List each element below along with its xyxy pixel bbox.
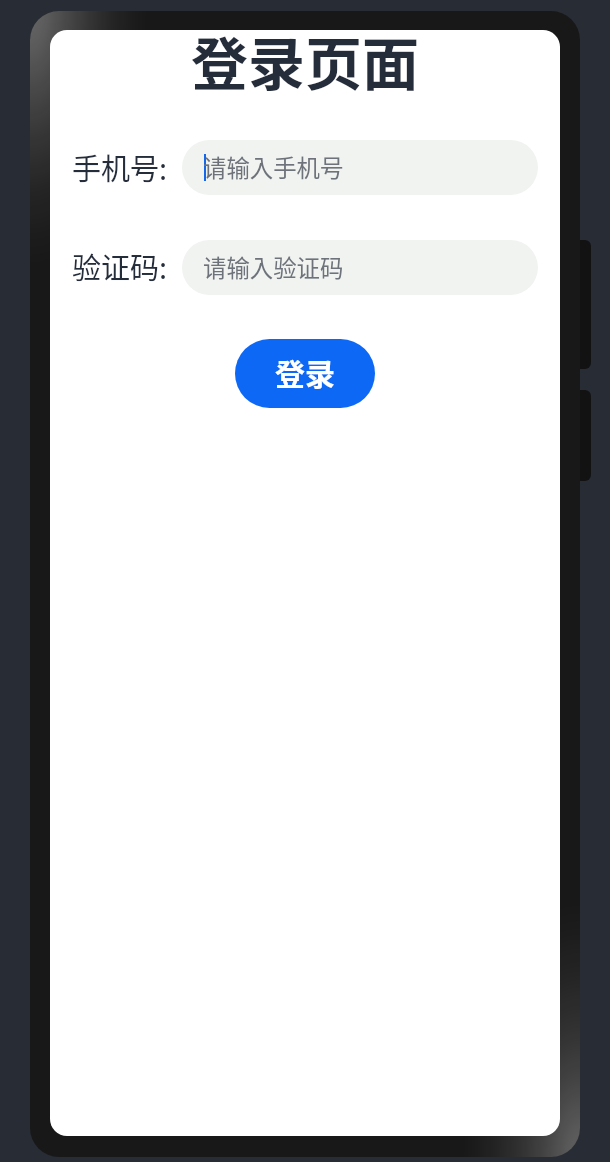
button[interactable]: Power button: [572, 390, 591, 481]
button[interactable]: 请输入手机号: [182, 140, 538, 195]
staticText: 登录页面: [50, 30, 560, 102]
staticText: 请输入手机号: [203, 150, 344, 184]
staticText: 登录: [275, 350, 335, 393]
staticText: 手机号:: [72, 146, 168, 188]
button[interactable]: 登录: [235, 339, 375, 408]
staticText: 验证码:: [72, 245, 168, 287]
staticText: 请输入验证码: [203, 250, 344, 284]
button[interactable]: Volume button: [572, 240, 591, 369]
button[interactable]: 请输入验证码: [182, 240, 538, 295]
